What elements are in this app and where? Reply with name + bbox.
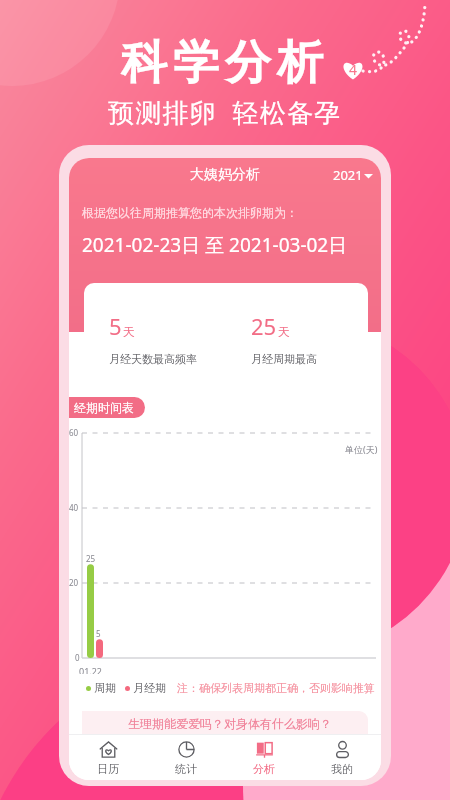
staticText: 20 <box>69 577 79 588</box>
staticText: 生理期能爱爱吗？对身体有什么影响？ <box>128 716 332 731</box>
staticText: 科学分析 <box>118 34 326 92</box>
staticText: 月经期 <box>133 681 166 695</box>
staticText: 我的 <box>331 762 353 776</box>
staticText: 大姨妈分析 <box>190 166 260 184</box>
staticText: 日历 <box>97 762 119 776</box>
button[interactable]: 日历 <box>69 735 147 780</box>
button[interactable]: 生理期能爱爱吗？对身体有什么影响？ <box>82 711 368 736</box>
staticText: 月经天数最高频率 <box>109 352 197 366</box>
staticText: 统计 <box>175 762 197 776</box>
staticText: 预测排卵 轻松备孕 <box>108 94 342 130</box>
staticText: 天 <box>278 324 290 339</box>
staticText: 25 <box>86 553 96 564</box>
staticText: 月经周期最高 <box>251 352 317 366</box>
button[interactable]: 我的 <box>303 735 381 780</box>
staticText: 01.22 <box>79 665 103 674</box>
staticText: 注：确保列表周期都正确，否则影响推算 <box>177 681 375 695</box>
staticText: 5 <box>109 311 122 341</box>
staticText: 2021-02-23日 至 2021-03-02日 <box>82 232 348 258</box>
staticText: 周期 <box>94 681 116 695</box>
staticText: 单位(天) <box>345 443 378 455</box>
staticText: 根据您以往周期推算您的本次排卵期为： <box>82 205 298 220</box>
staticText: 分析 <box>253 762 275 776</box>
staticText: 2021 <box>333 166 363 184</box>
button[interactable]: 分析 <box>225 735 303 780</box>
staticText: 5 <box>96 628 101 639</box>
staticText: 4 <box>349 60 358 79</box>
button[interactable]: 2021 <box>333 166 373 184</box>
staticText: 25 <box>251 311 277 341</box>
staticText: 天 <box>123 324 135 339</box>
staticText: 40 <box>69 502 79 513</box>
staticText: 经期时间表 <box>74 400 134 415</box>
button[interactable]: 统计 <box>147 735 225 780</box>
staticText: 0 <box>75 652 80 663</box>
staticText: 60 <box>69 427 79 438</box>
